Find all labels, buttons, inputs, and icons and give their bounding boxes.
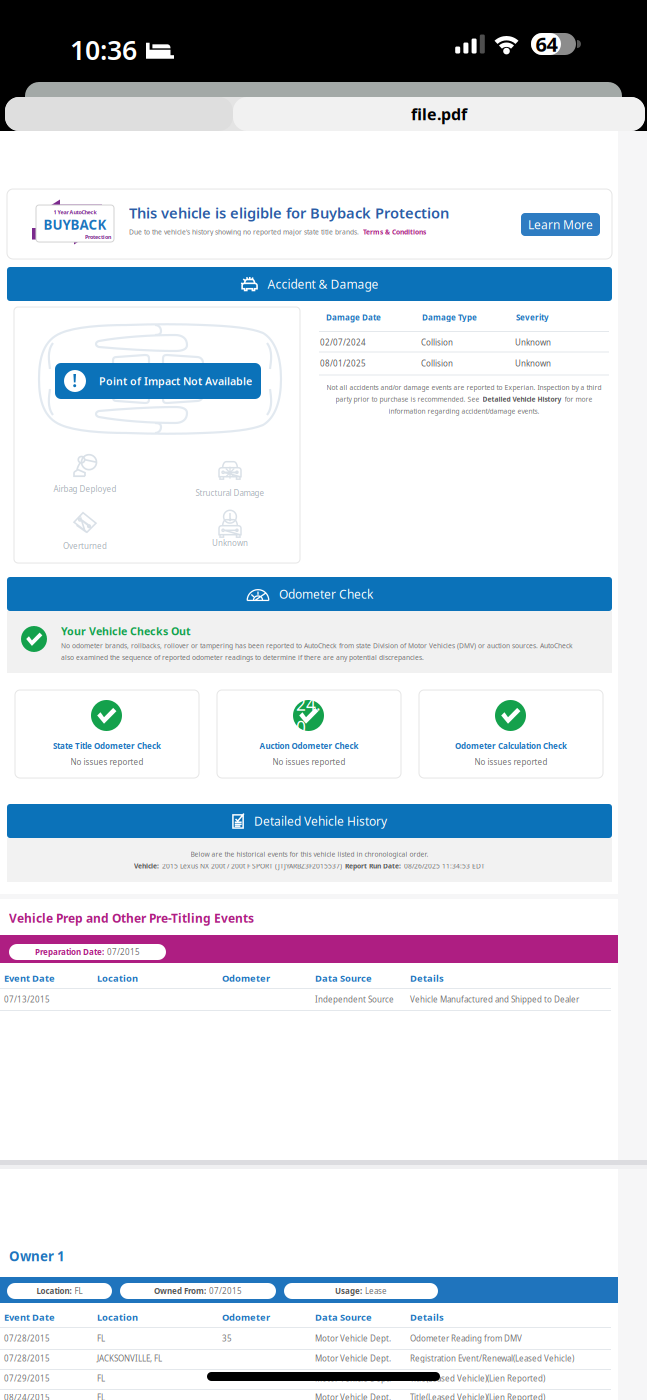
staticText: 2015 Lexus NX 200t / 200t F SPORT (JTJYA… xyxy=(162,861,342,870)
staticText: 07/2015 xyxy=(107,947,140,957)
staticText: Learn More xyxy=(528,216,593,232)
staticText: No issues reported xyxy=(70,757,143,767)
staticText: Motor Vehicle Dept. xyxy=(315,1333,391,1344)
staticText: Unknown xyxy=(515,337,551,348)
staticText: Overturned xyxy=(63,541,107,551)
button[interactable]: Previous tab xyxy=(5,97,233,131)
staticText: for more xyxy=(564,395,592,404)
staticText: Lease xyxy=(365,1286,387,1296)
staticText: Unknown xyxy=(515,358,551,369)
staticText: Odometer Calculation Check xyxy=(455,741,567,751)
staticText: 07/13/2015 xyxy=(4,994,50,1005)
staticText: information regarding accident/damage ev… xyxy=(388,407,539,416)
staticText: Structural Damage xyxy=(195,488,264,498)
staticText: FL xyxy=(97,1392,105,1400)
staticText: State Title Odometer Check xyxy=(53,741,161,751)
staticText: 07/28/2015 xyxy=(4,1333,50,1344)
staticText: Below are the historical events for this… xyxy=(190,850,428,858)
staticText: 08/24/2015 xyxy=(4,1392,50,1400)
staticText: Collision xyxy=(421,358,453,369)
staticText: Damage Type xyxy=(422,312,477,323)
staticText: Registration Event/Renewal(Leased Vehicl… xyxy=(410,1353,574,1364)
staticText: Report Run Date: xyxy=(345,861,401,870)
staticText: Not all accidents and/or damage events a… xyxy=(326,383,601,392)
staticText: Odometer xyxy=(222,972,270,984)
staticText: 02/07/2024 xyxy=(320,337,366,348)
staticText: 64 xyxy=(535,31,557,57)
staticText: BUYBACK xyxy=(43,216,106,233)
staticText: Severity xyxy=(516,312,549,323)
staticText: Odometer Reading from DMV xyxy=(410,1333,522,1344)
staticText: Collision xyxy=(421,337,453,348)
staticText: Data Source xyxy=(315,972,372,984)
button[interactable]: file.pdf xyxy=(233,97,645,131)
staticText: Motor Vehicle Dept. xyxy=(315,1373,391,1384)
staticText: This vehicle is eligible for Buyback Pro… xyxy=(129,203,449,222)
staticText: also examined the sequence of reported o… xyxy=(61,653,424,662)
staticText: Your Vehicle Checks Out xyxy=(61,624,191,638)
staticText: Event Date xyxy=(4,1311,55,1323)
staticText: 24.0 xyxy=(296,692,321,738)
staticText: Airbag Deployed xyxy=(53,484,116,494)
staticText: No issues reported xyxy=(272,757,345,767)
staticText: Location xyxy=(97,972,138,984)
staticText: Detailed Vehicle History xyxy=(482,395,561,404)
staticText: No issues reported xyxy=(474,757,547,767)
staticText: Accident & Damage xyxy=(267,276,378,292)
staticText: Preparation Date: xyxy=(35,947,104,957)
staticText: FL xyxy=(97,1373,105,1384)
staticText: Location xyxy=(97,1311,138,1323)
staticText: Usage: xyxy=(335,1286,362,1296)
staticText: Title(Leased Vehicle)(Lien Reported) xyxy=(410,1373,545,1384)
staticText: Details xyxy=(410,1311,444,1323)
staticText: FL xyxy=(74,1286,82,1296)
staticText: Odometer Check xyxy=(279,586,373,602)
staticText: Vehicle Prep and Other Pre-Titling Event… xyxy=(9,910,254,926)
staticText: Detailed Vehicle History xyxy=(254,813,387,829)
staticText: Owner 1 xyxy=(9,1247,65,1265)
staticText: party prior to purchase is recommended. … xyxy=(335,395,479,404)
staticText: FL xyxy=(97,1333,105,1344)
staticText: Point of Impact Not Available xyxy=(99,374,252,388)
staticText: Details xyxy=(410,972,444,984)
staticText: Title(Leased Vehicle)(Lien Reported) xyxy=(410,1392,545,1400)
staticText: Vehicle: xyxy=(134,861,159,870)
staticText: 08/01/2025 xyxy=(320,358,366,369)
staticText: Data Source xyxy=(315,1311,372,1323)
staticText: Motor Vehicle Dept. xyxy=(315,1392,391,1400)
staticText: file.pdf xyxy=(411,103,467,125)
staticText: Due to the vehicle's history showing no … xyxy=(129,227,359,236)
staticText: Auction Odometer Check xyxy=(259,741,358,751)
staticText: Damage Date xyxy=(326,312,381,323)
staticText: Vehicle Manufactured and Shipped to Deal… xyxy=(410,994,579,1005)
staticText: Motor Vehicle Dept. xyxy=(315,1353,391,1364)
staticText: Event Date xyxy=(4,972,55,984)
staticText: 07/28/2015 xyxy=(4,1353,50,1364)
staticText: Owned From: xyxy=(154,1286,206,1296)
staticText: 08/26/2025 11:34:53 EDT xyxy=(404,861,485,870)
staticText: Protection xyxy=(85,233,111,240)
staticText: No odometer brands, rollbacks, rollover … xyxy=(61,641,573,650)
staticText: 07/2015 xyxy=(209,1286,242,1296)
staticText: Independent Source xyxy=(315,994,394,1005)
staticText: Unknown xyxy=(212,538,248,548)
staticText: JACKSONVILLE, FL xyxy=(97,1353,162,1364)
staticText: 07/29/2015 xyxy=(4,1373,50,1384)
staticText: Terms & Conditions xyxy=(363,227,426,236)
button[interactable]: Learn More xyxy=(521,213,600,236)
staticText: Location: xyxy=(36,1286,71,1296)
staticText: 1 Year AutoCheck xyxy=(53,209,96,216)
staticText: 10:36 xyxy=(70,32,137,67)
staticText: 35 xyxy=(222,1333,232,1344)
staticText: Odometer xyxy=(222,1311,270,1323)
